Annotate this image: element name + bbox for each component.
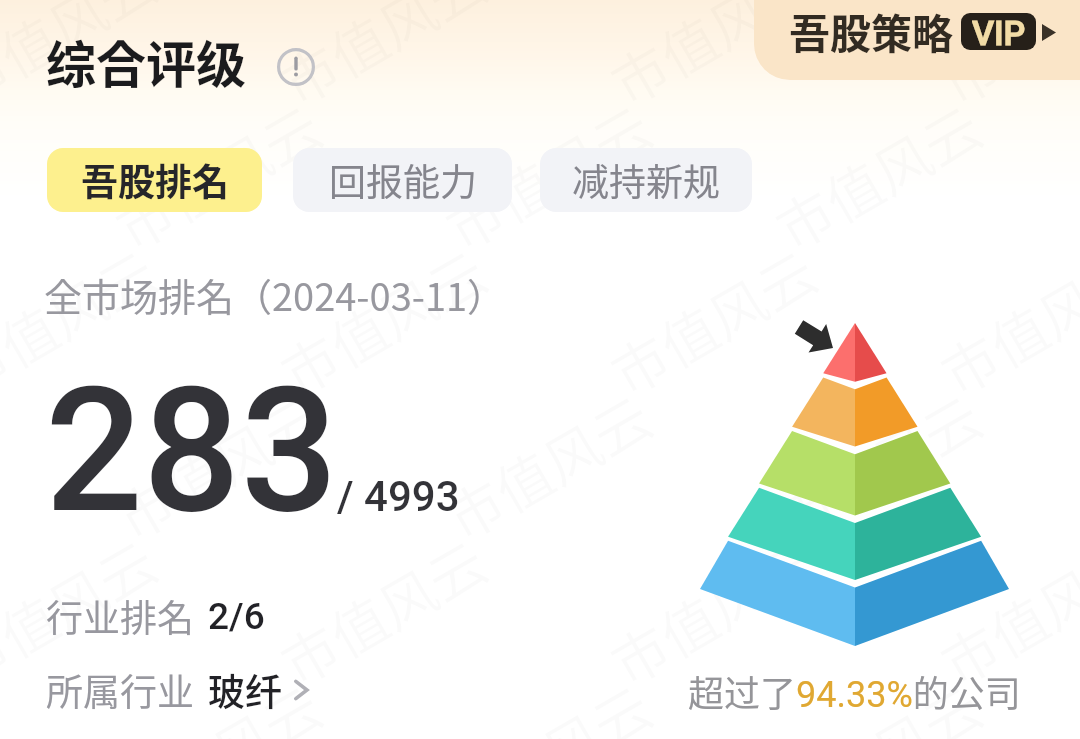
staticText: 市值风云 [595,0,829,121]
staticText: 市值风云 [100,374,334,556]
staticText: 市值风云 [0,229,169,411]
staticText: 市值风云 [100,664,334,739]
staticText: 市值风云 [265,519,499,701]
staticText: 市值风云 [100,84,334,266]
staticText: 综合评级 [46,25,246,97]
staticText: 吾股策略 [789,1,953,60]
staticText: 超过了94.33%的公司 [688,665,1021,717]
button[interactable]: 减持新规 [540,148,752,212]
staticText: 回报能力 [329,153,477,207]
staticText: 市值风云 [0,519,169,701]
staticText: 减持新规 [572,153,720,207]
staticText: 市值风云 [430,374,664,556]
staticText: 市值风云 [265,229,499,411]
staticText: 市值风云 [925,0,1080,121]
staticText: 市值风云 [595,519,829,701]
button[interactable]: 行业排名 [46,589,265,643]
staticText: 玻纤 [208,663,282,717]
staticText: 市值风云 [760,664,994,739]
staticText: 市值风云 [430,84,664,266]
staticText: 市值风云 [595,229,829,411]
button[interactable]: 吾股策略 [754,0,1080,80]
staticText: 市值风云 [0,0,169,121]
staticText: 吾股排名 [81,153,229,207]
staticText: 2/6 [208,595,265,638]
staticText: 市值风云 [925,519,1080,701]
staticText: 市值风云 [265,0,499,121]
button[interactable]: 吾股排名 [47,148,262,212]
staticText: VIP [972,13,1026,50]
button[interactable]: 所属行业 [46,663,314,717]
staticText: 283 [45,350,339,552]
staticText: 市值风云 [760,84,994,266]
staticText: 市值风云 [760,374,994,556]
staticText: 所属行业 [46,663,194,717]
staticText: 全市场排名（2024-03-11） [44,267,506,322]
button[interactable]: Info [275,46,317,88]
staticText: / 4993 [337,472,460,521]
button[interactable]: 回报能力 [293,148,512,212]
staticText: 行业排名 [46,589,194,643]
